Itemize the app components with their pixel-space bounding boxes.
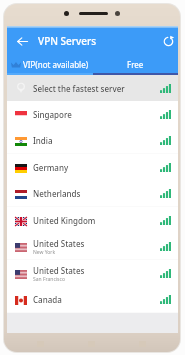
button[interactable]: Germany [7, 154, 178, 181]
button[interactable]: India [7, 127, 178, 154]
button[interactable]: United Kingdom [7, 207, 178, 234]
staticText: Canada [33, 294, 62, 305]
staticText: New York [33, 249, 56, 256]
staticText: Netherlands [33, 188, 81, 199]
button[interactable]: Refresh [158, 31, 178, 51]
staticText: Germany [33, 162, 69, 173]
button[interactable]: Free [92, 53, 178, 75]
staticText: Singapore [33, 109, 72, 120]
staticText: VIP(not available) [23, 59, 89, 70]
button[interactable]: Back [12, 31, 32, 51]
staticText: United Kingdom [33, 215, 96, 226]
button[interactable]: United States [7, 260, 178, 287]
staticText: San Francisco [33, 276, 65, 283]
button[interactable]: Select the fastest server [7, 75, 178, 101]
button[interactable]: Singapore [7, 101, 178, 128]
staticText: Select the fastest server [33, 83, 125, 94]
button[interactable]: VIP(not available) [7, 53, 92, 75]
button[interactable]: United States [7, 233, 178, 260]
button[interactable]: Netherlands [7, 180, 178, 207]
button[interactable]: Canada [7, 286, 178, 313]
staticText: Free [127, 59, 144, 70]
staticText: VPN Servers [38, 34, 97, 48]
staticText: United States [33, 238, 85, 249]
staticText: India [33, 135, 53, 146]
staticText: United States [33, 265, 85, 276]
